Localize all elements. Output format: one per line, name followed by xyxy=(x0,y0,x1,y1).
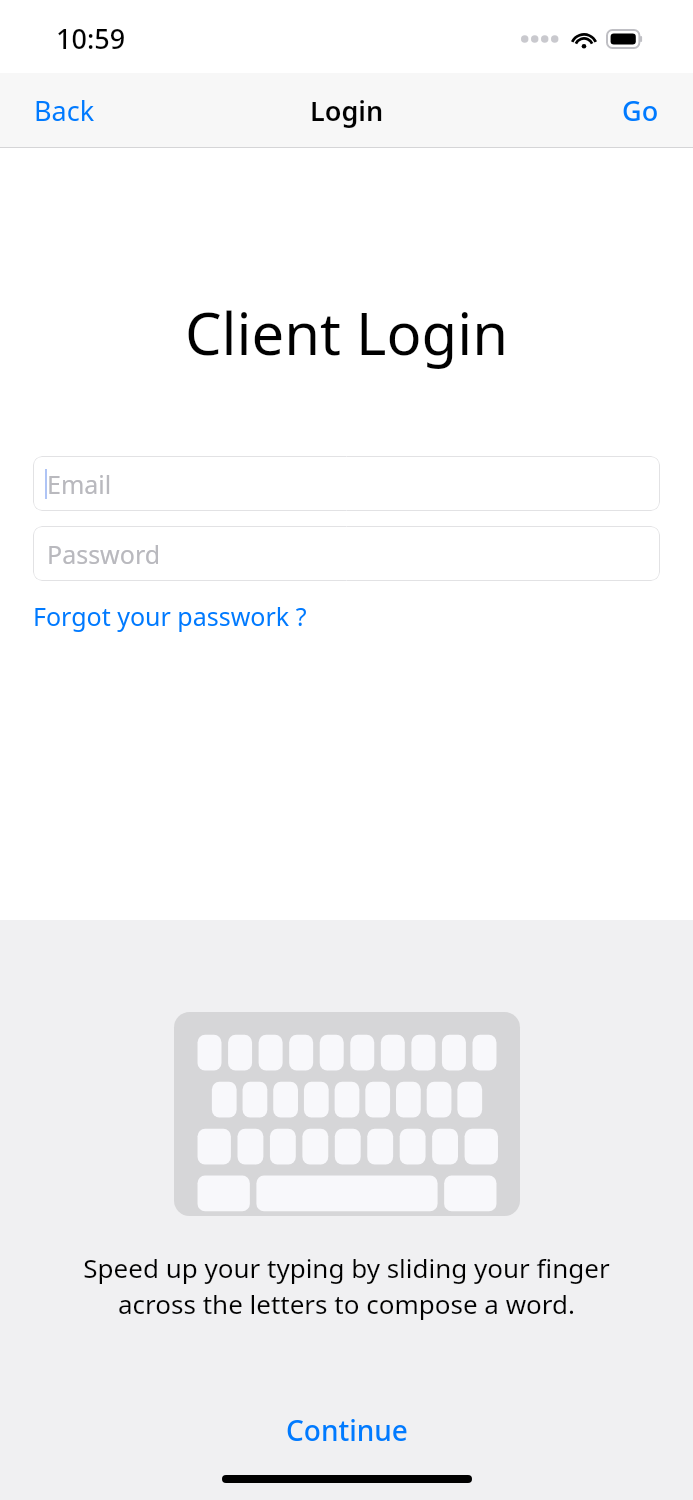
button[interactable]: Email xyxy=(33,456,660,511)
button[interactable]: Continue xyxy=(262,1403,432,1457)
staticText: Client Login xyxy=(0,293,693,372)
staticText: Email xyxy=(47,467,112,501)
button[interactable]: Forgot your passwork ? xyxy=(33,599,307,633)
button[interactable]: Password xyxy=(33,526,660,581)
staticText: Speed up your typing by sliding your fin… xyxy=(66,1250,627,1322)
staticText: Back xyxy=(34,92,95,129)
staticText: Continue xyxy=(286,1411,408,1449)
staticText: 10:59 xyxy=(56,20,126,57)
staticText: Password xyxy=(47,537,161,571)
staticText: Go xyxy=(622,92,659,129)
button[interactable]: Back xyxy=(0,73,129,148)
staticText: Forgot your passwork ? xyxy=(33,599,307,633)
button[interactable]: Go xyxy=(588,73,693,148)
staticText: Login xyxy=(310,92,384,129)
